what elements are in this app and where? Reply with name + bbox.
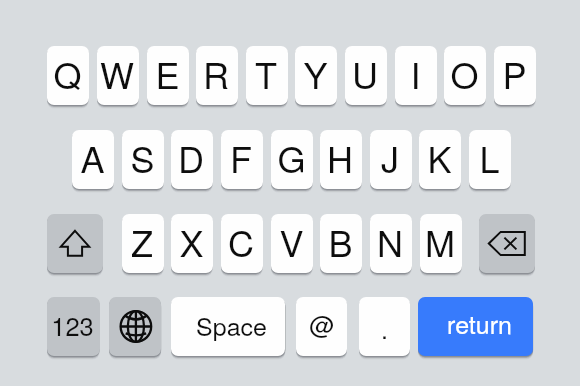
button[interactable]: T	[246, 46, 288, 105]
staticText: Q	[53, 48, 82, 100]
staticText: S	[130, 132, 155, 184]
staticText: A	[80, 132, 105, 184]
button[interactable]: E	[147, 46, 189, 105]
staticText: K	[427, 132, 452, 184]
button[interactable]: B	[320, 214, 362, 273]
button[interactable]: W	[97, 46, 139, 105]
staticText: return	[447, 305, 512, 341]
staticText: T	[255, 48, 277, 100]
staticText: N	[377, 216, 403, 268]
button[interactable]: Q	[47, 46, 89, 105]
staticText: Y	[303, 48, 328, 100]
staticText: W	[100, 48, 134, 100]
button[interactable]: R	[196, 46, 238, 105]
button[interactable]: V	[271, 214, 313, 273]
button[interactable]: Shift	[47, 214, 103, 273]
staticText: F	[230, 132, 252, 184]
staticText: Space	[196, 307, 267, 343]
staticText: H	[327, 132, 353, 184]
button[interactable]: @	[296, 297, 347, 356]
button[interactable]: F	[221, 130, 263, 189]
staticText: .	[381, 310, 388, 346]
staticText: B	[328, 216, 353, 268]
staticText: U	[352, 48, 378, 100]
staticText: G	[277, 132, 306, 184]
button[interactable]: I	[395, 46, 437, 105]
staticText: I	[410, 48, 421, 100]
staticText: R	[203, 48, 229, 100]
staticText: Z	[131, 216, 153, 268]
button[interactable]: Change keyboard language	[109, 297, 161, 356]
staticText: D	[178, 132, 204, 184]
button[interactable]: O	[444, 46, 486, 105]
staticText: C	[228, 216, 254, 268]
staticText: X	[179, 216, 204, 268]
button[interactable]: S	[122, 130, 164, 189]
button[interactable]: return	[418, 297, 533, 356]
staticText: V	[279, 216, 304, 268]
staticText: 123	[51, 307, 94, 344]
button[interactable]: J	[370, 130, 412, 189]
button[interactable]: X	[171, 214, 213, 273]
staticText: P	[502, 48, 527, 100]
button[interactable]: .	[359, 297, 410, 356]
staticText: J	[381, 132, 399, 184]
button[interactable]: H	[320, 130, 362, 189]
button[interactable]: Z	[122, 214, 164, 273]
staticText: O	[450, 48, 479, 100]
button[interactable]: M	[420, 214, 462, 273]
button[interactable]: N	[370, 214, 412, 273]
button[interactable]: K	[419, 130, 461, 189]
button[interactable]: L	[469, 130, 511, 189]
staticText: @	[309, 305, 335, 341]
staticText: L	[479, 132, 500, 184]
staticText: M	[425, 216, 455, 268]
button[interactable]: D	[171, 130, 213, 189]
staticText: E	[155, 48, 180, 100]
button[interactable]: A	[72, 130, 114, 189]
button[interactable]: C	[221, 214, 263, 273]
button[interactable]: Backspace	[479, 214, 535, 273]
button[interactable]: 123	[47, 297, 100, 356]
button[interactable]: G	[271, 130, 313, 189]
button[interactable]: U	[345, 46, 387, 105]
button[interactable]: Space	[171, 297, 285, 356]
button[interactable]: Y	[295, 46, 337, 105]
button[interactable]: P	[494, 46, 536, 105]
